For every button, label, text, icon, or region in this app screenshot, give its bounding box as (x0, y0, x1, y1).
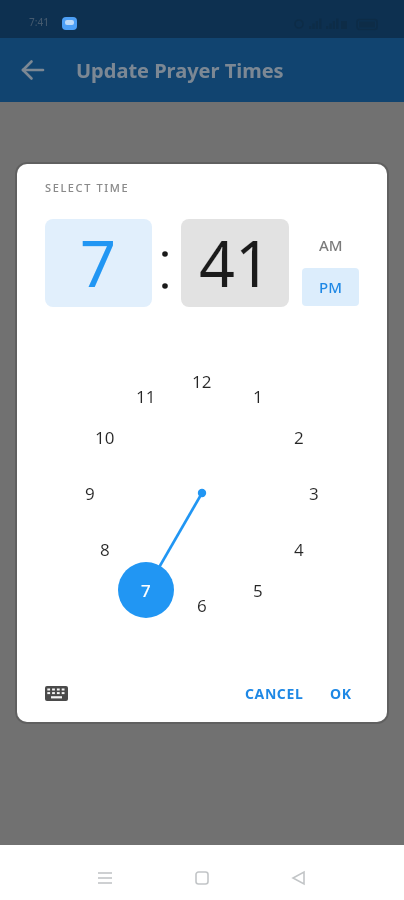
button[interactable]: CANCEL (232, 677, 316, 709)
staticText: Update Prayer Times (76, 57, 284, 84)
staticText: 7 (141, 579, 151, 602)
staticText: 7 (80, 220, 117, 306)
button[interactable] (41, 678, 73, 708)
staticText: 10 (95, 426, 115, 449)
staticText: 7:41 (29, 15, 49, 29)
button[interactable] (88, 861, 122, 895)
button[interactable]: PM (302, 268, 359, 306)
staticText: 1 (253, 385, 263, 408)
button[interactable]: 41 (181, 219, 289, 307)
staticText: 3 (309, 482, 319, 505)
staticText: PM (319, 277, 342, 297)
button[interactable] (14, 51, 52, 89)
button[interactable]: 7 (45, 219, 152, 307)
staticText: 11 (136, 385, 156, 408)
staticText: OK (330, 684, 352, 703)
button[interactable]: AM (302, 226, 359, 264)
button[interactable] (282, 861, 316, 895)
staticText: 8 (100, 538, 110, 561)
staticText: 9 (85, 482, 95, 505)
staticText: 5 (253, 579, 263, 602)
staticText: CANCEL (245, 684, 304, 703)
staticText: 2 (294, 426, 304, 449)
staticText: 4 (294, 538, 304, 561)
staticText: SELECT TIME (45, 180, 130, 195)
button[interactable] (185, 861, 219, 895)
staticText: 41 (199, 220, 272, 306)
button[interactable]: OK (318, 677, 364, 709)
staticText: AM (319, 235, 343, 255)
staticText: 6 (197, 594, 207, 617)
staticText: 12 (192, 370, 212, 393)
